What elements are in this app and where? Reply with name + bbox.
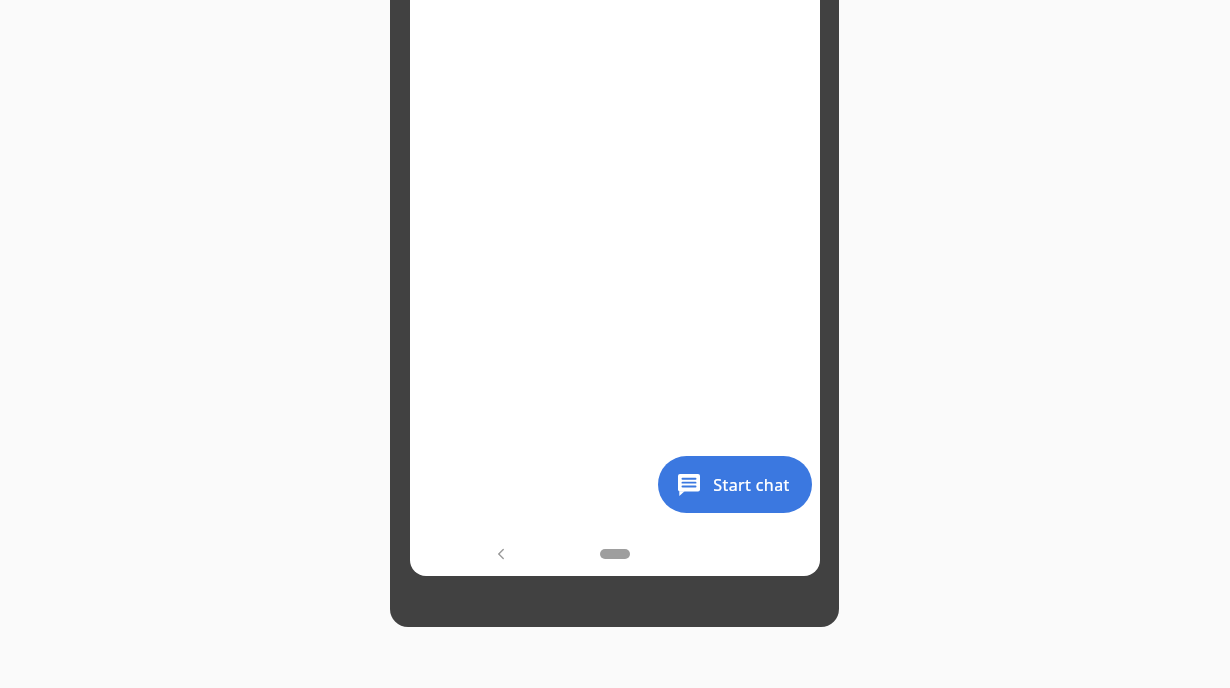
button[interactable]: Back <box>487 540 515 568</box>
button[interactable]: Start chat <box>658 456 812 513</box>
button[interactable]: Home <box>588 540 642 568</box>
staticText: Start chat <box>713 474 790 496</box>
